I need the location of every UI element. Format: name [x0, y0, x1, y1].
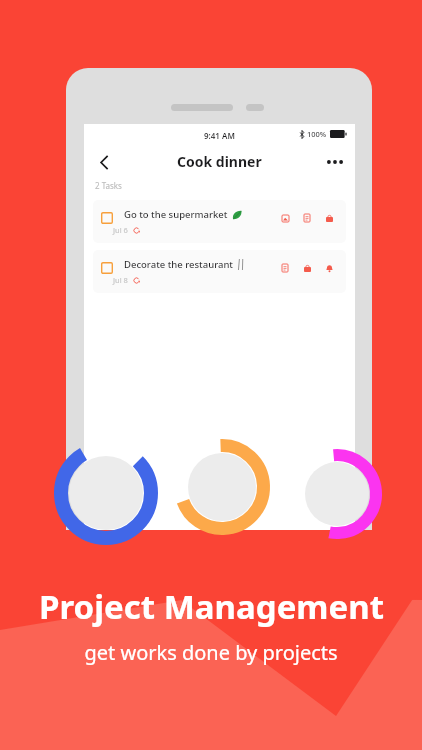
button[interactable]: Complete Decorate the restaurant [93, 250, 346, 293]
staticText: Go to the supermarket [124, 208, 228, 221]
staticText: Jul 8 [113, 275, 128, 285]
button[interactable]: Note [278, 261, 292, 275]
button[interactable]: Priority [322, 211, 336, 225]
button[interactable]: Reminder [322, 261, 336, 275]
staticText: get works done by projects [84, 639, 338, 666]
button[interactable]: Complete Go to the supermarket [93, 200, 346, 243]
button[interactable]: Note [300, 211, 314, 225]
button[interactable]: Complete Go to the supermarket [101, 212, 113, 224]
staticText: 2 Tasks [95, 180, 122, 191]
button[interactable]: Attachment [278, 211, 292, 225]
button[interactable]: Complete Decorate the restaurant [101, 262, 113, 274]
staticText: Jul 6 [113, 225, 128, 235]
button[interactable]: Priority [300, 261, 314, 275]
staticText: Project Management [39, 584, 384, 629]
button[interactable]: Back [90, 148, 118, 176]
staticText: 100% [307, 129, 327, 139]
staticText: Cook dinner [177, 152, 262, 171]
staticText: Decorate the restaurant [124, 258, 233, 271]
button[interactable]: More options [321, 148, 349, 176]
staticText: 9:41 AM [204, 130, 235, 141]
